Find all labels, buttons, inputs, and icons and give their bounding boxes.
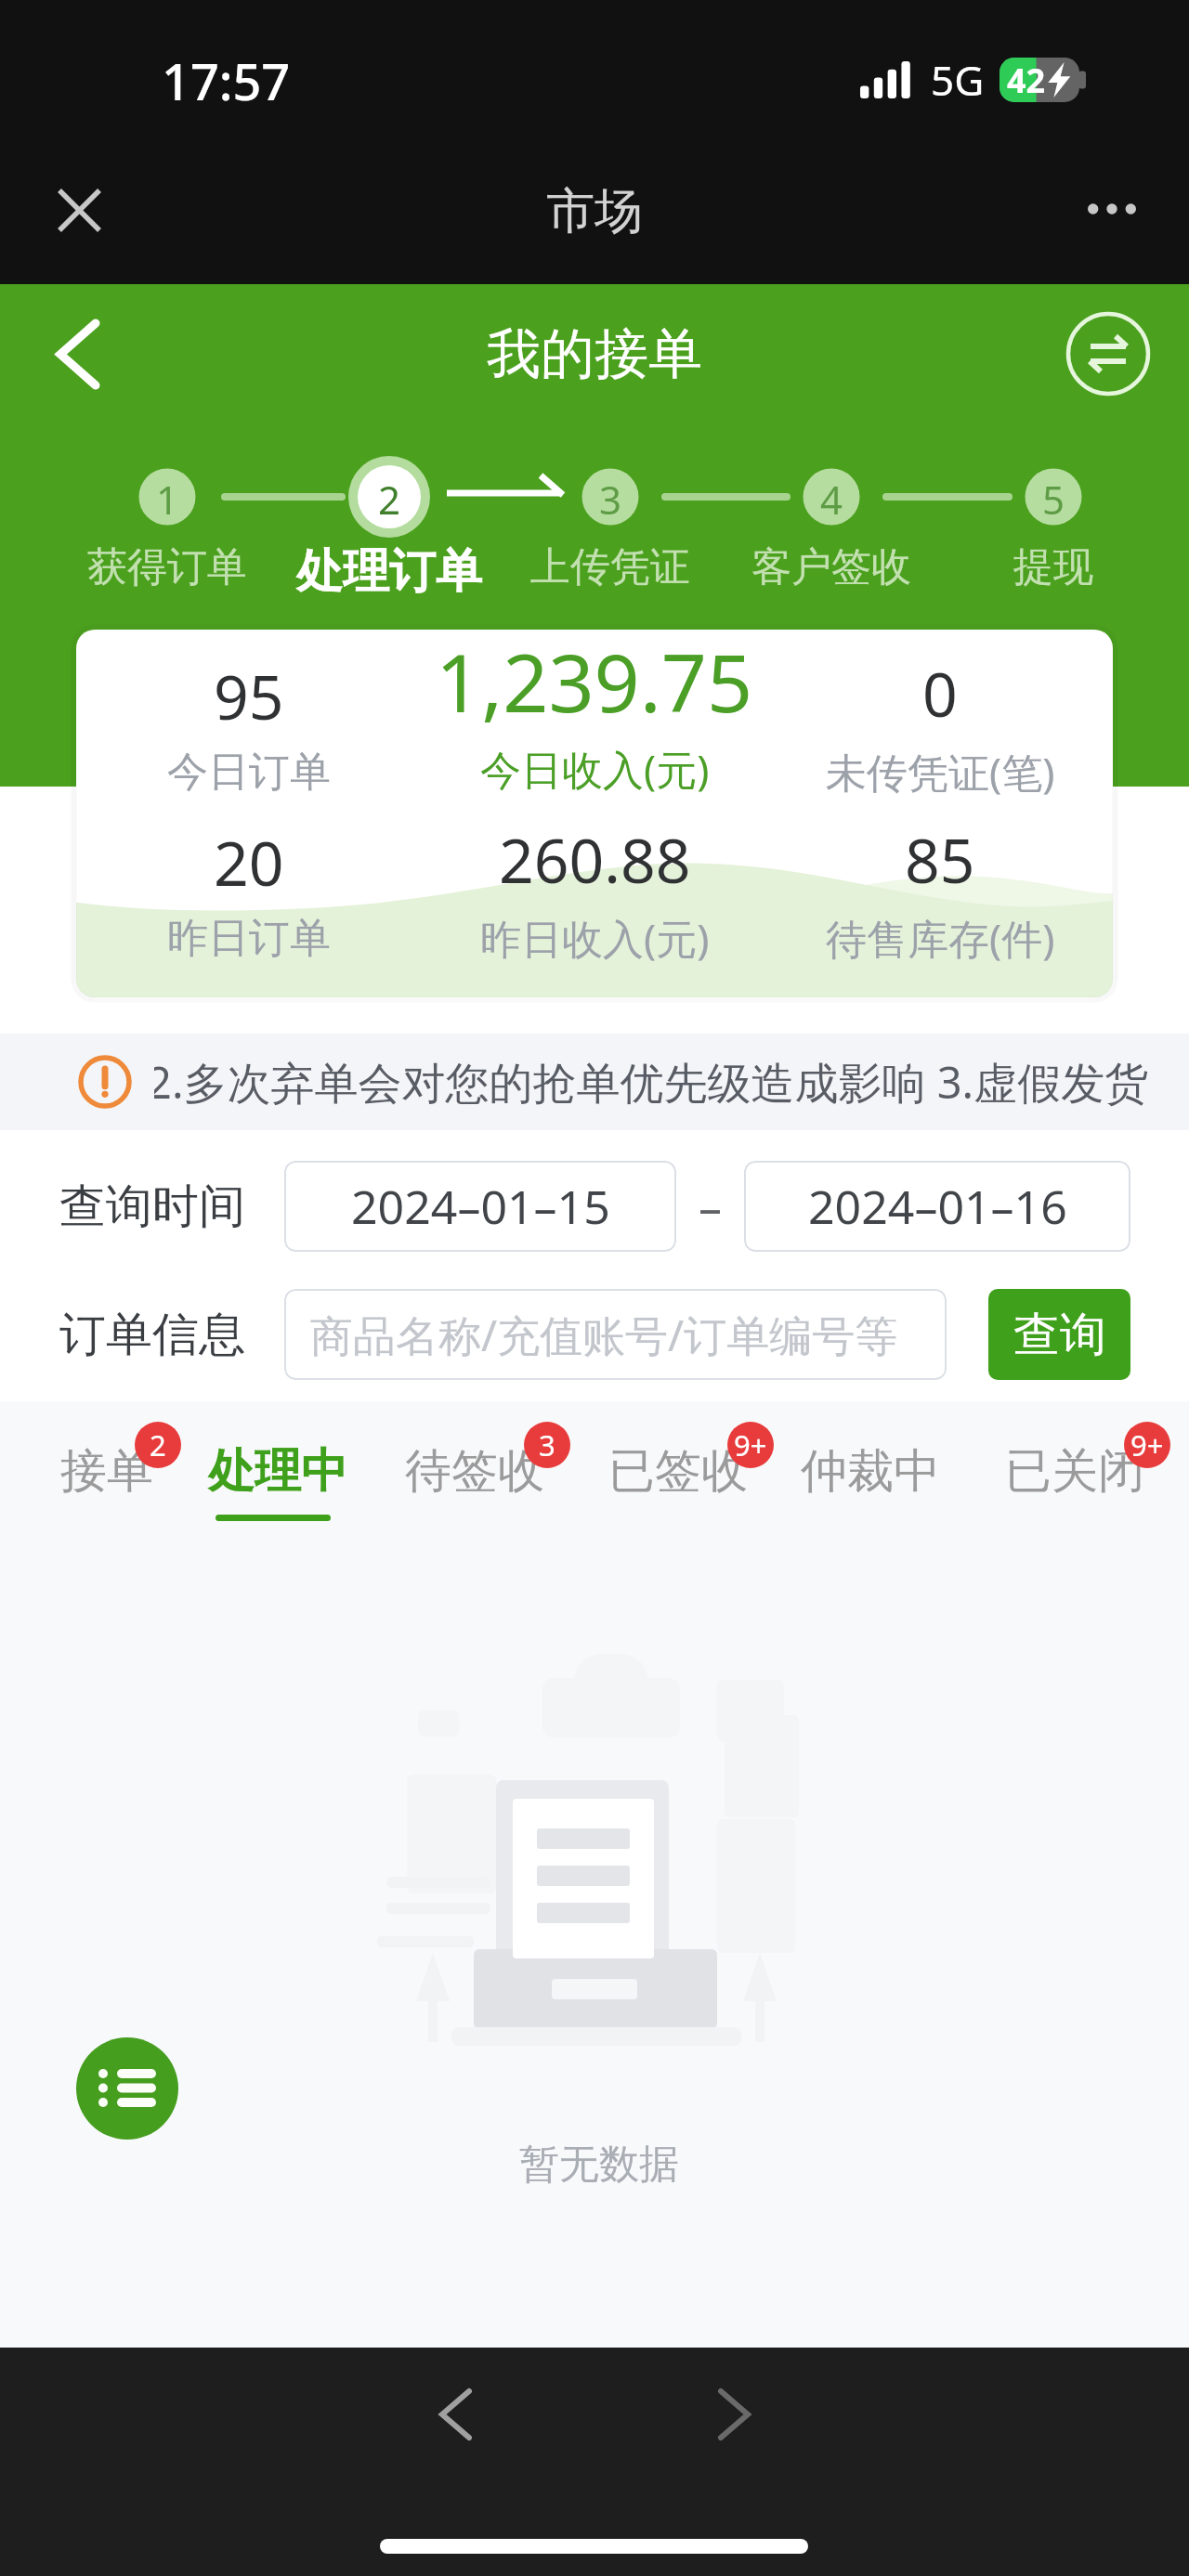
button[interactable]: 85 [767,817,1113,966]
button[interactable]: 处理中 [186,1401,407,1541]
button[interactable]: 商品名称/充值账号/订单编号等 [284,1289,947,1380]
button[interactable]: 1,239.75 [422,644,767,808]
staticText: 今日订单 [167,747,331,798]
staticText: 暂无数据 [519,2140,679,2190]
button[interactable]: 2024–01–16 [744,1161,1130,1252]
staticText: 9+ [1130,1425,1164,1464]
staticText: 待签收 [405,1442,544,1501]
staticText: 2024–01–15 [351,1175,610,1238]
staticText: 42 [1007,58,1046,102]
staticText: 昨日订单 [167,913,331,964]
staticText: 待售库存(件) [826,910,1055,966]
button[interactable]: Back [399,2359,511,2470]
staticText: 处理中 [208,1442,347,1501]
button[interactable]: Switch account [1057,303,1159,405]
staticText: 昨日收入(元) [480,910,710,966]
staticText: 2 [150,1425,166,1464]
staticText: 4 [804,473,859,526]
button[interactable]: 20 [76,820,422,964]
staticText: 接单 [60,1442,153,1501]
button[interactable]: 0 [767,651,1113,800]
staticText: 2024–01–16 [808,1175,1067,1238]
staticText: 提现 [933,542,1174,592]
staticText: 订单信息 [59,1306,245,1364]
staticText: 上传凭证 [490,542,731,592]
staticText: 商品名称/充值账号/订单编号等 [310,1306,898,1364]
staticText: 我的接单 [487,320,702,388]
staticText: 市场 [546,181,643,242]
staticText: 已关闭 [1005,1442,1144,1501]
staticText: 5 [1026,473,1081,526]
staticText: 1,239.75 [436,630,753,735]
button[interactable]: Order list [76,2037,178,2140]
staticText: 5G [931,52,985,108]
button[interactable]: 接单 [38,1401,215,1541]
staticText: 0 [922,651,958,735]
staticText: 2 [361,473,417,526]
staticText: 20 [214,820,284,904]
staticText: 17:57 [162,46,291,115]
staticText: 未传凭证(笔) [826,744,1055,800]
button[interactable]: 已关闭 [983,1401,1189,1541]
staticText: 2.多次弃单会对您的抢单优先级造成影响 3.虚假发货 [154,1052,1149,1112]
staticText: 客户签收 [711,542,952,592]
button[interactable]: 仲裁中 [778,1401,1000,1541]
staticText: 3 [539,1425,555,1464]
staticText: 1 [139,473,195,526]
staticText: 9+ [734,1425,767,1464]
staticText: – [676,1175,744,1238]
button[interactable]: More options [1070,167,1154,251]
staticText: 处理订单 [268,542,510,601]
button[interactable]: 已签收 [586,1401,807,1541]
button[interactable]: 95 [76,654,422,798]
staticText: 仲裁中 [801,1442,940,1501]
button[interactable]: 待签收 [383,1401,604,1541]
button[interactable]: Forward [678,2359,790,2470]
staticText: 85 [905,817,975,901]
staticText: 已签收 [608,1442,748,1501]
button[interactable]: 260.88 [422,817,767,966]
staticText: 今日收入(元) [480,741,710,797]
staticText: 260.88 [499,817,691,901]
button[interactable]: Close [37,168,121,252]
staticText: 查询 [1013,1306,1106,1364]
button[interactable]: 2024–01–15 [284,1161,676,1252]
button[interactable]: Back [33,309,123,398]
staticText: 获得订单 [46,542,288,592]
staticText: 95 [214,654,284,737]
staticText: 3 [582,473,638,526]
staticText: 查询时间 [59,1177,245,1236]
button[interactable]: 查询 [988,1289,1130,1380]
